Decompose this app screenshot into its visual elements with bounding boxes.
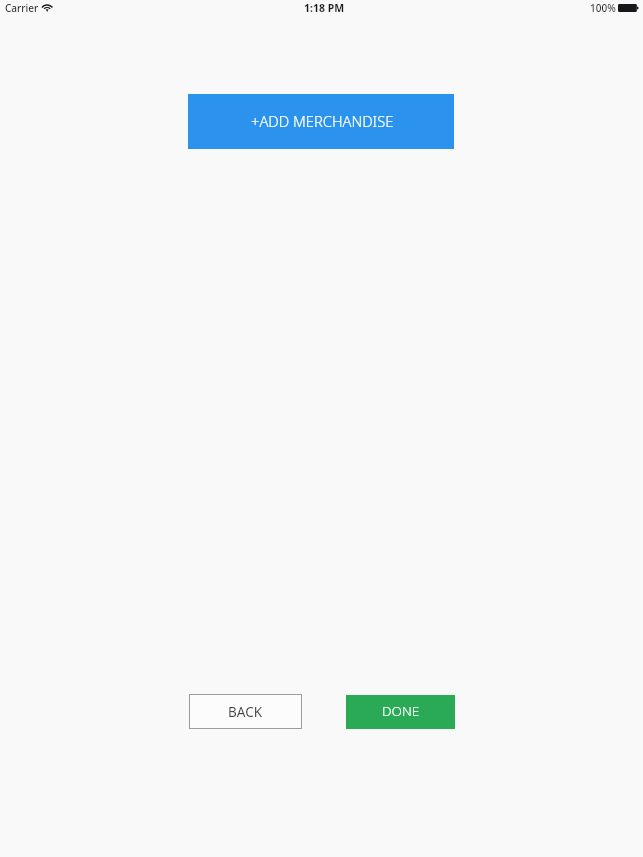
staticText: Carrier [5, 1, 39, 15]
other: Battery full [618, 4, 639, 12]
staticText: +ADD MERCHANDISE [251, 111, 394, 131]
staticText: 1:18 PM [304, 1, 345, 15]
button[interactable]: BACK [189, 694, 302, 729]
button[interactable]: +ADD MERCHANDISE [188, 94, 454, 149]
staticText: BACK [228, 703, 263, 721]
staticText: 100% [590, 1, 616, 15]
button[interactable]: DONE [346, 695, 455, 729]
other: Wi-Fi signal [42, 4, 53, 12]
staticText: DONE [382, 702, 420, 720]
